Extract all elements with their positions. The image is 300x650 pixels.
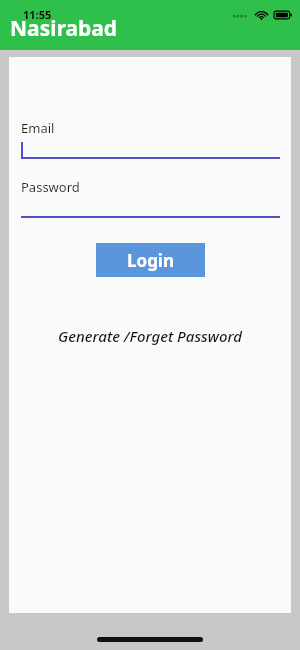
button[interactable] [21, 137, 280, 159]
button[interactable]: Generate /Forget Password [9, 323, 291, 349]
staticText: Generate /Forget Password [58, 326, 242, 346]
staticText: Password [21, 178, 80, 196]
button[interactable]: Login [96, 243, 205, 277]
button[interactable] [21, 196, 280, 218]
staticText: Login [127, 249, 175, 272]
staticText: Nasirabad [10, 14, 118, 43]
staticText: 11:55 [23, 7, 52, 22]
staticText: Email [21, 119, 55, 137]
